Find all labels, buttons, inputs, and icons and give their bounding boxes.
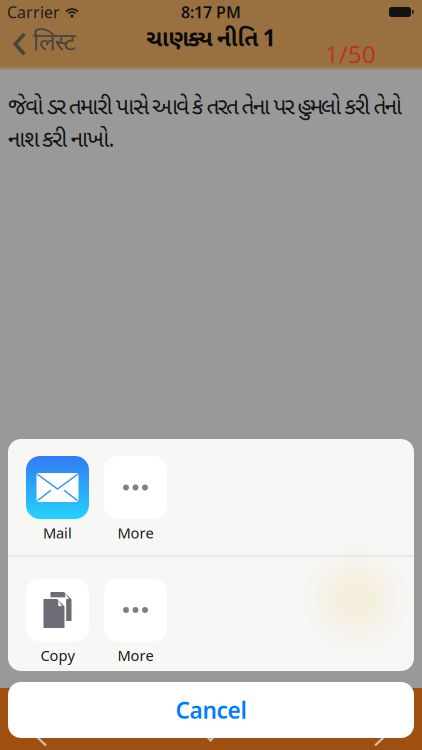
staticText: જેવો ડર તમારી પાસે આવે કે તરત તેના પર હુ… <box>8 94 402 156</box>
staticText: ચાણક્ય નીતિ 1 <box>146 26 276 56</box>
staticText: More <box>117 523 153 542</box>
button[interactable]: Mail <box>26 456 89 542</box>
staticText: 8:17 PM <box>181 1 241 23</box>
button[interactable]: Cancel <box>8 682 414 738</box>
staticText: More <box>117 645 153 665</box>
button[interactable]: Previous <box>0 688 10 704</box>
staticText: Mail <box>43 523 72 542</box>
button[interactable]: Next <box>0 688 10 704</box>
staticText: Carrier <box>7 1 60 23</box>
button[interactable]: Back <box>0 18 76 60</box>
button[interactable]: Dismiss <box>0 688 11 694</box>
staticText: लिस्ट <box>33 28 76 60</box>
button[interactable]: Copy <box>26 578 89 665</box>
staticText: Copy <box>40 645 74 665</box>
button[interactable]: More <box>104 456 167 542</box>
button[interactable]: More <box>104 578 167 665</box>
staticText: Cancel <box>175 695 246 725</box>
staticText: 1/50 <box>325 38 376 70</box>
